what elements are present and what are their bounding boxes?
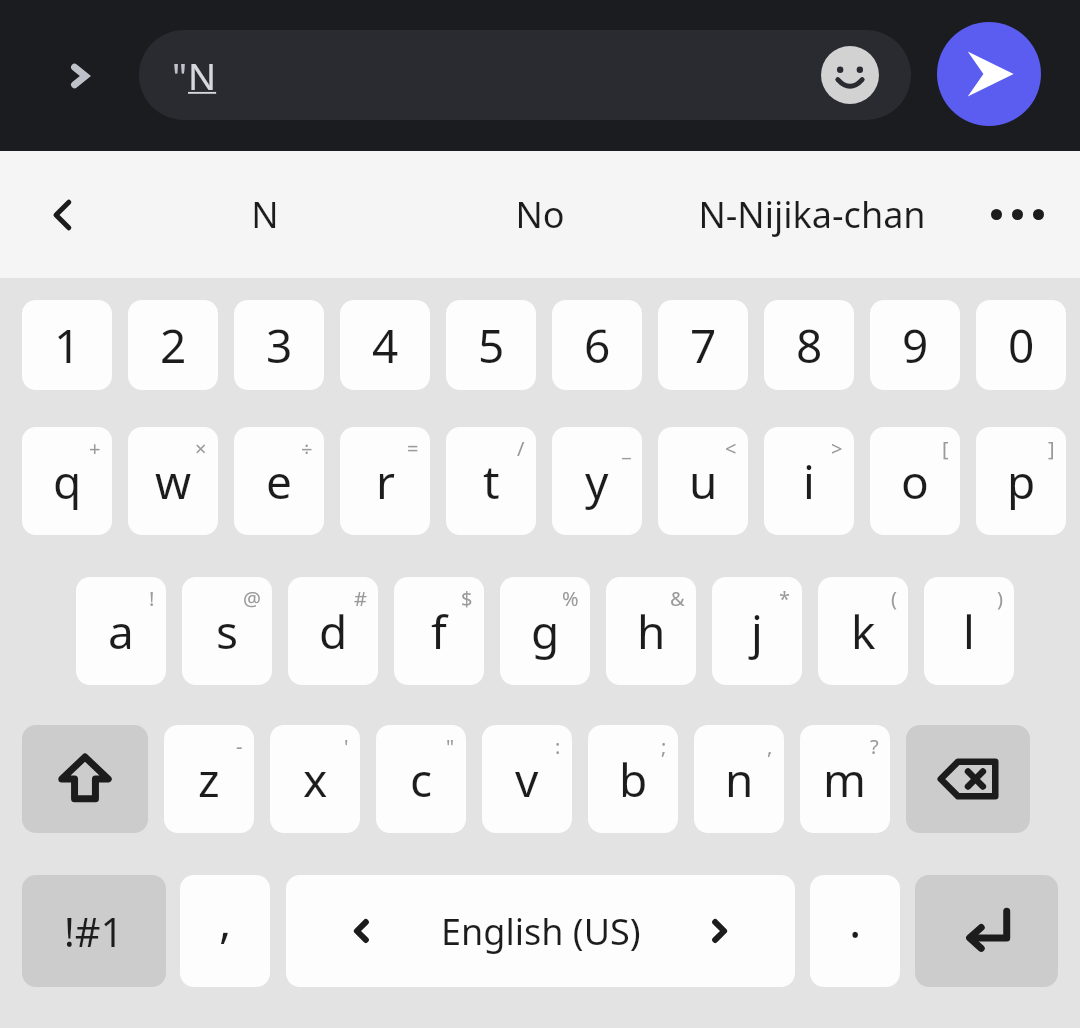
button[interactable]: * [712,577,802,685]
staticText: ? [870,733,879,760]
button[interactable]: Back [32,151,96,278]
button[interactable]: , [694,725,784,833]
button[interactable]: > [764,427,854,535]
staticText: 6 [584,314,611,377]
button[interactable]: Shift [22,725,148,833]
button[interactable]: × [128,427,218,535]
button[interactable]: # [288,577,378,685]
staticText: 3 [266,314,293,377]
button[interactable]: Symbols [22,875,166,987]
staticText: y [585,450,609,513]
staticText: z [198,748,220,811]
button[interactable]: / [446,427,536,535]
staticText: !#1 [64,904,124,958]
staticText: a [108,600,134,663]
staticText: " [446,733,455,760]
staticText: j [751,600,763,663]
button[interactable]: ' [270,725,360,833]
button[interactable]: 9 [870,300,960,390]
staticText: t [483,450,500,513]
staticText: b [619,748,648,811]
staticText: m [823,748,867,811]
staticText: = [407,435,419,462]
staticText: ÷ [301,435,313,462]
button[interactable]: 8 [764,300,854,390]
staticText: < [725,435,737,462]
button[interactable]: Space [286,875,795,987]
staticText: . [849,889,862,952]
button[interactable]: [ [870,427,960,535]
staticText: , [767,733,773,760]
button[interactable]: 0 [976,300,1066,390]
staticText: o [901,450,929,513]
staticText: 9 [902,314,929,377]
staticText: v [515,748,539,811]
button[interactable]: No [390,151,690,278]
staticText: r [376,450,395,513]
button[interactable]: . [810,875,900,987]
staticText: ( [891,585,897,612]
staticText: [ [942,435,949,462]
button[interactable]: + [22,427,112,535]
button[interactable]: ( [818,577,908,685]
staticText: > [831,435,843,462]
button[interactable]: More options [975,151,1059,278]
button[interactable]: Emoji [819,44,881,106]
staticText: _ [622,435,631,462]
staticText: g [531,600,560,663]
button[interactable]: = [340,427,430,535]
staticText: d [319,600,348,663]
staticText: N [188,50,217,100]
button[interactable]: < [658,427,748,535]
staticText: : [555,733,561,760]
staticText: * [779,585,791,612]
button[interactable]: , [180,875,270,987]
button[interactable]: ? [800,725,890,833]
button[interactable]: ; [588,725,678,833]
button[interactable]: " [376,725,466,833]
staticText: - [236,733,243,760]
staticText: % [562,585,579,612]
button[interactable]: % [500,577,590,685]
staticText: + [89,435,101,462]
button[interactable]: @ [182,577,272,685]
staticText: & [670,585,685,612]
button[interactable]: Expand [50,0,110,151]
staticText: 1 [54,314,81,377]
button[interactable]: 7 [658,300,748,390]
staticText: ] [1048,435,1055,462]
button[interactable]: ! [76,577,166,685]
button[interactable]: 4 [340,300,430,390]
button[interactable]: Enter [915,875,1058,987]
staticText: English (US) [441,907,641,956]
button[interactable]: : [482,725,572,833]
button[interactable]: N-Nijika-chan [662,151,962,278]
button[interactable]: - [164,725,254,833]
staticText: " [172,50,188,100]
staticText: h [637,600,666,663]
button[interactable]: _ [552,427,642,535]
button[interactable]: 3 [234,300,324,390]
button[interactable]: 6 [552,300,642,390]
button[interactable]: Send [937,22,1041,126]
staticText: ' [344,733,349,760]
button[interactable]: $ [394,577,484,685]
button[interactable]: N [115,151,415,278]
button[interactable]: ] [976,427,1066,535]
button[interactable]: 2 [128,300,218,390]
button[interactable]: 1 [22,300,112,390]
button[interactable]: " [139,30,911,120]
staticText: $ [461,585,473,612]
button[interactable]: Backspace [906,725,1030,833]
staticText: 7 [690,314,717,377]
staticText: 5 [478,314,505,377]
staticText: No [515,190,565,239]
button[interactable]: ) [924,577,1014,685]
staticText: p [1007,450,1036,513]
staticText: c [410,748,433,811]
button[interactable]: ÷ [234,427,324,535]
button[interactable]: & [606,577,696,685]
staticText: k [851,600,876,663]
staticText: w [155,450,192,513]
button[interactable]: 5 [446,300,536,390]
